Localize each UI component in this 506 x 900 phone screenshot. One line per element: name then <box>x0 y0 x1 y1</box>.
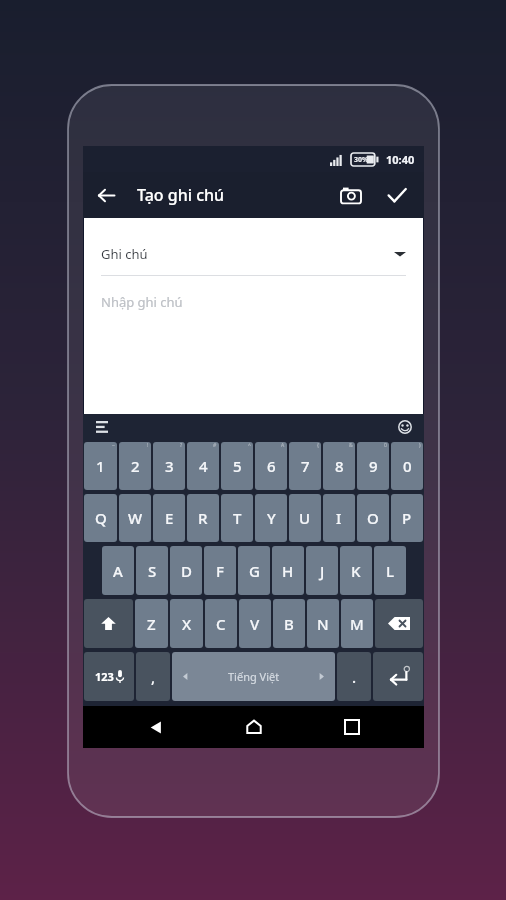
staticText: O <box>367 508 379 528</box>
button[interactable]: Recents <box>326 706 378 748</box>
staticText: ^ <box>248 442 251 449</box>
button[interactable]: R <box>187 494 219 542</box>
button[interactable]: # <box>187 442 219 490</box>
staticText: U <box>299 508 311 528</box>
staticText: Tạo ghi chú <box>137 184 225 206</box>
button[interactable]: Camera <box>328 172 374 218</box>
button[interactable]: W <box>119 494 151 542</box>
staticText: 30% <box>354 155 369 165</box>
button[interactable]: Save <box>374 172 420 218</box>
button[interactable]: F <box>204 546 236 595</box>
staticText: A <box>113 561 123 581</box>
staticText: L <box>386 561 395 581</box>
staticText: 0 <box>403 456 412 476</box>
staticText: F <box>216 561 224 581</box>
staticText: V <box>250 614 260 634</box>
staticText: 1 <box>96 456 105 476</box>
staticText: I <box>336 508 342 528</box>
button[interactable]: J <box>306 546 338 595</box>
button[interactable]: L <box>374 546 406 595</box>
button[interactable]: B <box>273 599 305 648</box>
staticText: & <box>349 442 353 449</box>
staticText: 7 <box>301 456 310 476</box>
button[interactable]: U <box>289 494 321 542</box>
staticText: G <box>249 561 260 581</box>
staticText: S <box>148 561 157 581</box>
staticText: Q <box>95 508 107 528</box>
button[interactable]: Numbers and voice <box>84 652 134 701</box>
button[interactable]: Ghi chú <box>101 245 406 263</box>
button[interactable]: C <box>205 599 237 648</box>
staticText: ? <box>180 442 183 449</box>
button[interactable]: S <box>136 546 168 595</box>
button[interactable]: A <box>102 546 134 595</box>
staticText: J <box>320 561 325 581</box>
button[interactable]: ! <box>119 442 151 490</box>
staticText: H <box>282 561 294 581</box>
button[interactable]: Shift <box>84 599 133 648</box>
button[interactable]: Z <box>135 599 168 648</box>
staticText: M <box>350 614 364 634</box>
button[interactable]: ? <box>153 442 185 490</box>
staticText: ) <box>419 442 421 449</box>
staticText: 6 <box>267 456 276 476</box>
staticText: 123 <box>95 669 114 684</box>
button[interactable]: Back <box>83 172 129 218</box>
button[interactable]: G <box>238 546 270 595</box>
button[interactable]: Keyboard menu <box>91 416 113 438</box>
staticText: A <box>281 442 285 449</box>
button[interactable]: K <box>340 546 372 595</box>
button[interactable]: , <box>136 652 170 701</box>
button[interactable]: Q <box>84 494 117 542</box>
staticText: 9 <box>369 456 378 476</box>
button[interactable]: Space, Tiếng Việt <box>172 652 335 701</box>
button[interactable]: H <box>272 546 304 595</box>
button[interactable]: V <box>239 599 271 648</box>
button[interactable]: D <box>170 546 202 595</box>
staticText: D <box>181 561 192 581</box>
staticText: R <box>198 508 208 528</box>
button[interactable]: & <box>323 442 355 490</box>
staticText: Y <box>267 508 276 528</box>
staticText: Ghi chú <box>101 245 148 263</box>
button[interactable]: 0 <box>357 442 389 490</box>
staticText: W <box>128 508 143 528</box>
button[interactable]: M <box>341 599 373 648</box>
button[interactable]: Back <box>129 706 181 748</box>
staticText: N <box>317 614 329 634</box>
button[interactable]: I <box>323 494 355 542</box>
staticText: X <box>182 614 192 634</box>
staticText: 0 <box>384 442 387 449</box>
staticText: 10:40 <box>386 152 415 167</box>
staticText: . <box>352 667 357 687</box>
button[interactable]: Y <box>255 494 287 542</box>
staticText: 3 <box>165 456 174 476</box>
button[interactable]: { <box>289 442 321 490</box>
button[interactable]: ^ <box>221 442 253 490</box>
staticText: 2 <box>131 456 140 476</box>
button[interactable]: A <box>255 442 287 490</box>
staticText: , <box>151 667 156 687</box>
button[interactable]: Enter <box>373 652 423 701</box>
button[interactable]: X <box>170 599 203 648</box>
staticText: # <box>213 442 217 449</box>
staticText: K <box>351 561 361 581</box>
staticText: 8 <box>335 456 344 476</box>
button[interactable]: O <box>357 494 389 542</box>
staticText: ! <box>147 442 149 449</box>
button[interactable]: N <box>307 599 339 648</box>
button[interactable]: Backspace <box>375 599 423 648</box>
staticText: P <box>402 508 412 528</box>
button[interactable]: Home <box>228 706 280 748</box>
button[interactable]: ) <box>391 442 423 490</box>
button[interactable]: T <box>221 494 253 542</box>
staticText: 5 <box>233 456 242 476</box>
button[interactable]: . <box>337 652 371 701</box>
button[interactable]: P <box>391 494 423 542</box>
button[interactable]: E <box>153 494 185 542</box>
staticText: { <box>317 442 319 449</box>
button[interactable]: Emoji <box>394 416 416 438</box>
button[interactable]: ~ <box>84 442 117 490</box>
staticText: B <box>284 614 294 634</box>
staticText: Z <box>147 614 156 634</box>
